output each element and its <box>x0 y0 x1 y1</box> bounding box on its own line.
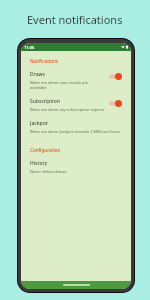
staticText: Jackpot <box>30 120 48 127</box>
button[interactable]: Subscription <box>30 98 122 112</box>
staticText: Warn me when jackpot exceeds 2 Millions … <box>30 129 120 134</box>
staticText: Configuration <box>30 147 61 153</box>
button[interactable]: Jackpot <box>30 120 122 134</box>
staticText: 11:06 <box>24 45 35 50</box>
staticText: Warn me when my subscription expires <box>30 107 105 112</box>
staticText: Warn me when new results are available <box>30 80 105 90</box>
button[interactable]: History <box>30 160 122 174</box>
staticText: Subscription <box>30 98 60 105</box>
staticText: Draws <box>30 71 45 78</box>
staticText: Event notifications <box>27 12 123 27</box>
button[interactable]: Configuration <box>30 147 122 153</box>
button[interactable]: Draws <box>30 71 122 90</box>
staticText: Notifications <box>30 58 59 64</box>
button[interactable]: Toggle Draws notifications <box>109 73 122 80</box>
staticText: Never delete draws. <box>30 169 68 174</box>
staticText: History <box>30 160 48 167</box>
button[interactable]: Toggle Subscription notifications <box>109 100 122 107</box>
button[interactable]: Notifications <box>30 58 122 64</box>
